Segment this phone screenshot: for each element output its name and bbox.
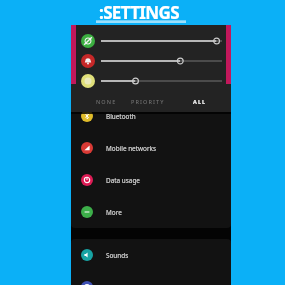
- button[interactable]: ALL: [190, 94, 210, 109]
- staticText: Mobile networks: [106, 144, 157, 153]
- staticText: Data usage: [106, 176, 140, 185]
- button[interactable]: Sounds: [71, 239, 231, 271]
- button[interactable]: More: [71, 196, 231, 228]
- button[interactable]: Display: [71, 271, 231, 285]
- staticText: NONE: [96, 98, 117, 105]
- button[interactable]: Media volume: [71, 71, 231, 91]
- button[interactable]: Brightness: [71, 31, 231, 51]
- button[interactable]: Mobile networks: [71, 132, 231, 164]
- staticText: :SETTINGS: [99, 1, 179, 24]
- staticText: PRIORITY: [131, 98, 165, 105]
- staticText: Sounds: [106, 251, 129, 260]
- staticText: Bluetooth: [106, 112, 136, 121]
- staticText: More: [106, 208, 122, 217]
- button[interactable]: Ring volume: [71, 51, 231, 71]
- button[interactable]: Bluetooth: [71, 100, 231, 132]
- button[interactable]: Data usage: [71, 164, 231, 196]
- button[interactable]: PRIORITY: [128, 94, 168, 109]
- staticText: ALL: [193, 98, 207, 105]
- button[interactable]: NONE: [93, 94, 120, 109]
